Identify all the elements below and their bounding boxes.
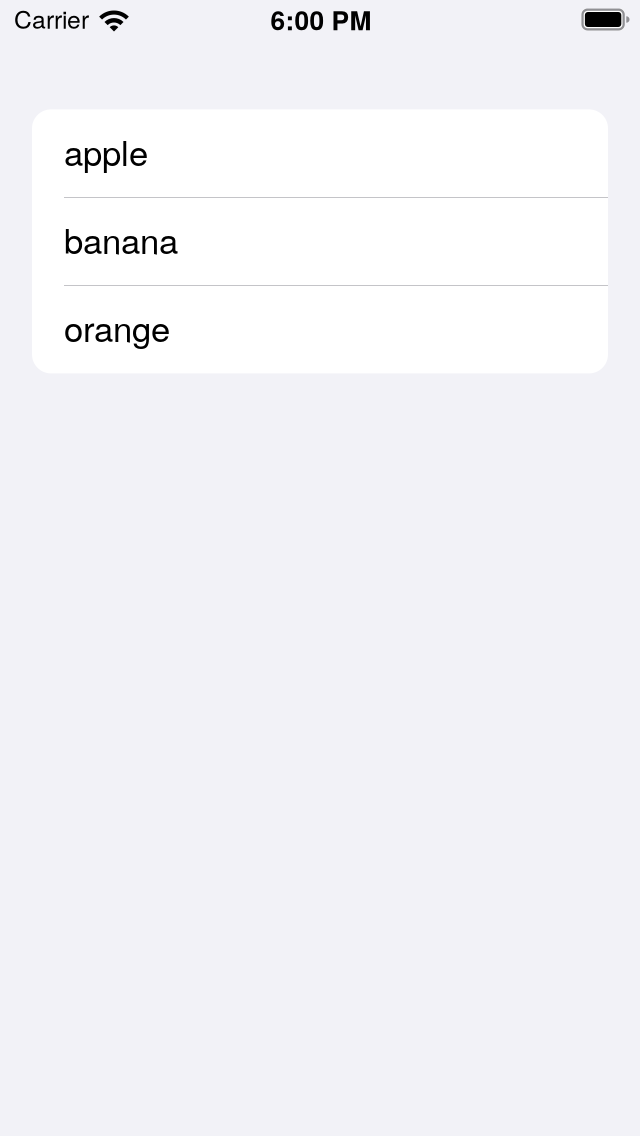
staticText: 6:00 PM: [270, 1, 371, 38]
button[interactable]: banana: [32, 197, 608, 285]
staticText: Carrier: [14, 0, 89, 36]
staticText: orange: [64, 302, 170, 352]
button[interactable]: apple: [32, 109, 608, 197]
button[interactable]: orange: [32, 285, 608, 373]
staticText: apple: [64, 126, 148, 176]
staticText: banana: [64, 214, 178, 264]
